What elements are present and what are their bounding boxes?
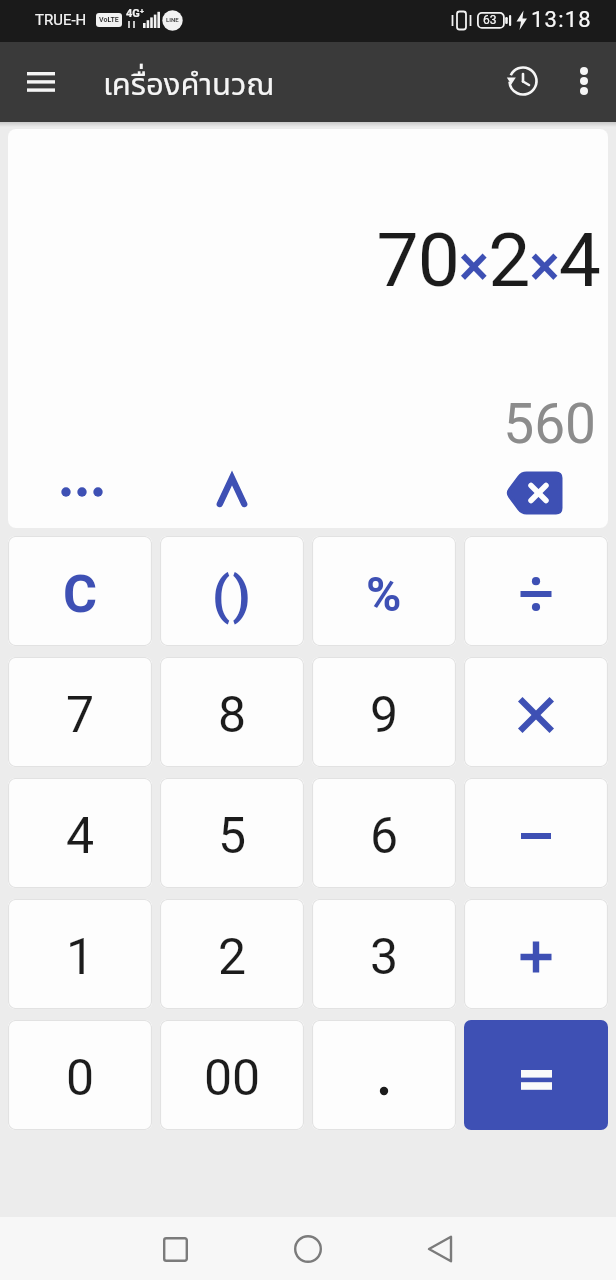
button[interactable] [284, 1225, 332, 1273]
button[interactable]: 4 [8, 778, 152, 888]
staticText: 560 [8, 392, 596, 456]
button[interactable]: 9 [312, 657, 456, 767]
staticText: 70×2×4 [8, 216, 600, 304]
button[interactable]: 0 [8, 1020, 152, 1130]
staticText: 9 [370, 686, 399, 745]
button[interactable] [464, 536, 608, 646]
button[interactable] [416, 1225, 464, 1273]
staticText: 8 [218, 686, 247, 745]
button[interactable] [202, 459, 264, 517]
button[interactable] [490, 459, 585, 517]
button[interactable]: 8 [160, 657, 304, 767]
button[interactable]: 5 [160, 778, 304, 888]
staticText: 4 [66, 807, 95, 866]
button[interactable] [464, 657, 608, 767]
button[interactable] [151, 1225, 199, 1273]
button[interactable]: 00 [160, 1020, 304, 1130]
button[interactable] [499, 57, 547, 105]
staticText: % [366, 566, 402, 622]
button[interactable]: 3 [312, 899, 456, 1009]
staticText: 4G⁺ [126, 7, 145, 20]
button[interactable]: 1 [8, 899, 152, 1009]
button[interactable] [38, 465, 128, 517]
button[interactable] [312, 1020, 456, 1130]
button[interactable]: C [8, 536, 152, 646]
button[interactable]: % [312, 536, 456, 646]
button[interactable] [17, 62, 65, 102]
button[interactable]: 6 [312, 778, 456, 888]
staticText: LINE [166, 16, 179, 23]
staticText: 0 [66, 1049, 95, 1108]
staticText: 5 [218, 807, 247, 866]
button[interactable]: 7 [8, 657, 152, 767]
staticText: 13:18 [531, 7, 592, 33]
button[interactable] [464, 1020, 608, 1130]
staticText: 3 [370, 928, 399, 987]
staticText: () [212, 565, 253, 626]
staticText: VoLTE [99, 16, 119, 24]
button[interactable] [464, 899, 608, 1009]
staticText: 6 [370, 807, 399, 866]
staticText: 1 [66, 928, 95, 987]
staticText: เครื่องคำนวณ [103, 62, 275, 109]
button[interactable]: 2 [160, 899, 304, 1009]
staticText: C [63, 564, 98, 625]
staticText: TRUE-H [35, 11, 87, 29]
button[interactable] [464, 778, 608, 888]
staticText: 2 [218, 928, 247, 987]
button[interactable] [560, 57, 608, 105]
staticText: 7 [66, 686, 95, 745]
staticText: 00 [204, 1049, 261, 1108]
staticText: 63 [483, 13, 497, 27]
button[interactable]: () [160, 536, 304, 646]
